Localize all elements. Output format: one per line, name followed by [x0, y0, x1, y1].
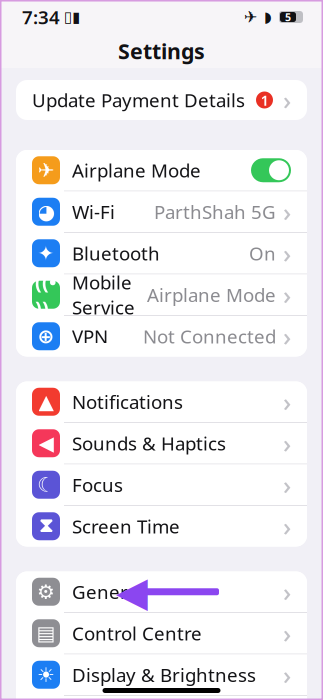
staticText: 7:34 [22, 5, 60, 29]
staticText: › [283, 83, 291, 117]
staticText: Mobile Service [72, 270, 135, 320]
staticText: Airplane Mode [147, 282, 276, 307]
staticText: ☀ [37, 663, 55, 686]
staticText: Bluetooth [72, 241, 160, 266]
staticText: General [72, 579, 142, 604]
staticText: ☾ [37, 473, 55, 496]
staticText: ⚙ [37, 580, 55, 603]
staticText: Screen Time [72, 514, 180, 539]
staticText: 1 [260, 90, 268, 110]
button[interactable]: ☀ [16, 654, 307, 695]
button[interactable]: ((•)) [16, 274, 307, 315]
staticText: › [283, 195, 291, 228]
button[interactable]: ◕ [16, 191, 307, 232]
staticText: ⊕ [37, 325, 54, 348]
staticText: › [283, 616, 291, 650]
staticText: › [283, 278, 291, 311]
button[interactable]: ⚙ [16, 571, 307, 612]
staticText: ParthShah 5G [154, 199, 276, 224]
staticText: ((•)) [35, 268, 57, 321]
button[interactable]: Update Payment Details [16, 80, 307, 120]
staticText: Display & Brightness [72, 662, 256, 687]
staticText: Focus [72, 472, 123, 497]
staticText: › [283, 319, 291, 353]
staticText: Not Connected [143, 324, 276, 349]
button[interactable]: ✦ [16, 233, 307, 273]
staticText: ◕ [37, 200, 54, 223]
button[interactable]: ✈ [16, 150, 307, 190]
button[interactable]: ▤ [16, 613, 307, 653]
button[interactable]: ⧗ [16, 506, 307, 546]
staticText: Notifications [72, 389, 183, 414]
staticText: Sounds & Haptics [72, 431, 226, 456]
staticText: › [283, 509, 291, 543]
button[interactable]: Accessibility [16, 696, 307, 700]
staticText: ▲ [38, 390, 53, 413]
staticText: ◀ [116, 568, 148, 615]
staticText: Airplane Mode [72, 158, 201, 183]
staticText: › [283, 658, 291, 691]
staticText: ▤ [36, 622, 55, 645]
staticText: Settings [118, 37, 205, 65]
button[interactable]: ☾ [16, 464, 307, 505]
staticText: › [283, 575, 291, 608]
staticText: 5 [285, 10, 291, 24]
staticText: ▯▮ [64, 9, 80, 25]
button[interactable]: ⊕ [16, 316, 307, 356]
staticText: Wi-Fi [72, 199, 115, 224]
staticText: › [283, 426, 291, 460]
staticText: VPN [72, 324, 108, 349]
staticText: ✈ [37, 159, 54, 182]
staticText: › [283, 468, 291, 501]
staticText: ◗ [264, 9, 272, 25]
staticText: On [249, 241, 276, 266]
staticText: ◀ [38, 432, 53, 455]
staticText: ✦ [37, 242, 54, 265]
staticText: › [283, 236, 291, 270]
staticText: › [283, 385, 291, 418]
staticText: ✈ [244, 8, 257, 26]
staticText: ⧗ [39, 516, 53, 536]
button[interactable]: ▲ [16, 381, 307, 422]
staticText: Update Payment Details [32, 88, 245, 112]
button[interactable]: ◀ [16, 423, 307, 463]
staticText: Control Centre [72, 621, 202, 646]
